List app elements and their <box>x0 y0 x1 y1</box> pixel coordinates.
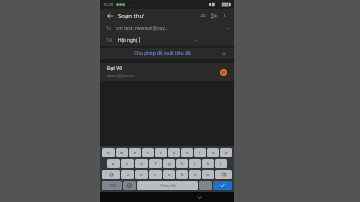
button[interactable]: Shift <box>102 170 120 179</box>
button[interactable]: a <box>107 159 120 168</box>
staticText: t <box>160 150 162 156</box>
button[interactable]: Tiếng Việt <box>137 181 198 190</box>
button[interactable]: Backspace <box>215 170 232 179</box>
staticText: To <box>106 25 111 31</box>
staticText: cm test: newtest@xaydungnoithat.v… <box>116 25 170 32</box>
staticText: x <box>140 172 143 178</box>
staticText: a <box>112 161 115 167</box>
button[interactable]: w <box>116 148 128 157</box>
button[interactable]: t <box>155 148 167 157</box>
button[interactable]: . <box>199 181 212 190</box>
button[interactable]: k <box>202 159 214 168</box>
staticText: ⌄ ⌄ <box>127 3 133 7</box>
staticText: u <box>186 150 189 156</box>
button[interactable]: m <box>202 170 214 179</box>
button[interactable]: Emoji <box>123 181 136 190</box>
button[interactable]: To <box>100 22 234 34</box>
staticText: Tiếng Việt <box>160 183 176 188</box>
staticText: r <box>147 150 149 156</box>
button[interactable]: f <box>149 159 162 168</box>
button[interactable]: v <box>163 170 175 179</box>
staticText: i <box>199 150 201 156</box>
button[interactable]: Hide keyboard <box>184 192 214 202</box>
button[interactable]: r <box>142 148 154 157</box>
staticText: k <box>207 161 210 167</box>
staticText: g <box>168 161 171 167</box>
button[interactable]: Tiê <box>100 34 234 46</box>
staticText: o <box>212 150 215 156</box>
staticText: c <box>154 172 157 178</box>
button[interactable]: x <box>135 170 148 179</box>
staticText: l <box>220 161 222 167</box>
staticText: Soạn thư <box>118 12 144 20</box>
button[interactable]: p <box>220 148 232 157</box>
button[interactable]: c <box>149 170 162 179</box>
button[interactable]: g <box>163 159 175 168</box>
button[interactable]: j <box>189 159 201 168</box>
staticText: q <box>107 150 110 156</box>
staticText: dainv@jnn.vn <box>107 73 134 79</box>
staticText: h <box>181 161 184 167</box>
button[interactable]: y <box>168 148 180 157</box>
button[interactable]: Attach file <box>197 10 208 21</box>
button[interactable]: z <box>121 170 134 179</box>
staticText: n <box>194 172 197 178</box>
staticText: ?123 <box>109 184 116 188</box>
staticText: Hội nghị <box>118 37 138 44</box>
staticText: b <box>181 172 184 178</box>
staticText: 10:28 <box>103 2 114 7</box>
button[interactable]: n <box>189 170 201 179</box>
staticText: e <box>134 150 137 156</box>
staticText: y <box>173 150 176 156</box>
button[interactable]: Dismiss <box>220 50 228 58</box>
button[interactable]: e <box>129 148 141 157</box>
button[interactable]: Cho phép đề xuất tiêu đề <box>100 48 234 59</box>
button[interactable]: Back <box>104 10 115 21</box>
button[interactable]: l <box>215 159 227 168</box>
button[interactable]: b <box>176 170 188 179</box>
button[interactable]: q <box>102 148 115 157</box>
button[interactable]: h <box>176 159 188 168</box>
staticText: . <box>205 183 207 189</box>
staticText: Tiê <box>106 37 113 43</box>
button[interactable]: i <box>194 148 206 157</box>
staticText: z <box>127 172 129 178</box>
staticText: Đạt Võ <box>107 65 123 72</box>
button[interactable]: More options <box>219 10 230 21</box>
button[interactable]: s <box>121 159 134 168</box>
button[interactable]: Send <box>208 10 219 21</box>
button[interactable]: d <box>135 159 148 168</box>
button[interactable]: Enter <box>213 181 232 190</box>
staticText: v <box>168 172 171 178</box>
staticText: p <box>225 150 228 156</box>
button[interactable]: u <box>181 148 193 157</box>
staticText: w <box>120 150 124 156</box>
staticText: Cho phép đề xuất tiêu đề <box>134 50 191 57</box>
button[interactable]: Đạt Võ <box>100 63 234 81</box>
staticText: j <box>194 161 196 167</box>
staticText: m <box>206 172 210 178</box>
button[interactable]: Avatar <box>220 69 227 76</box>
staticText: Đ <box>222 70 225 75</box>
button[interactable]: o <box>207 148 219 157</box>
button[interactable]: ?123 <box>102 181 122 190</box>
staticText: d <box>140 161 143 167</box>
staticText: s <box>126 161 129 167</box>
staticText: f <box>155 161 157 167</box>
